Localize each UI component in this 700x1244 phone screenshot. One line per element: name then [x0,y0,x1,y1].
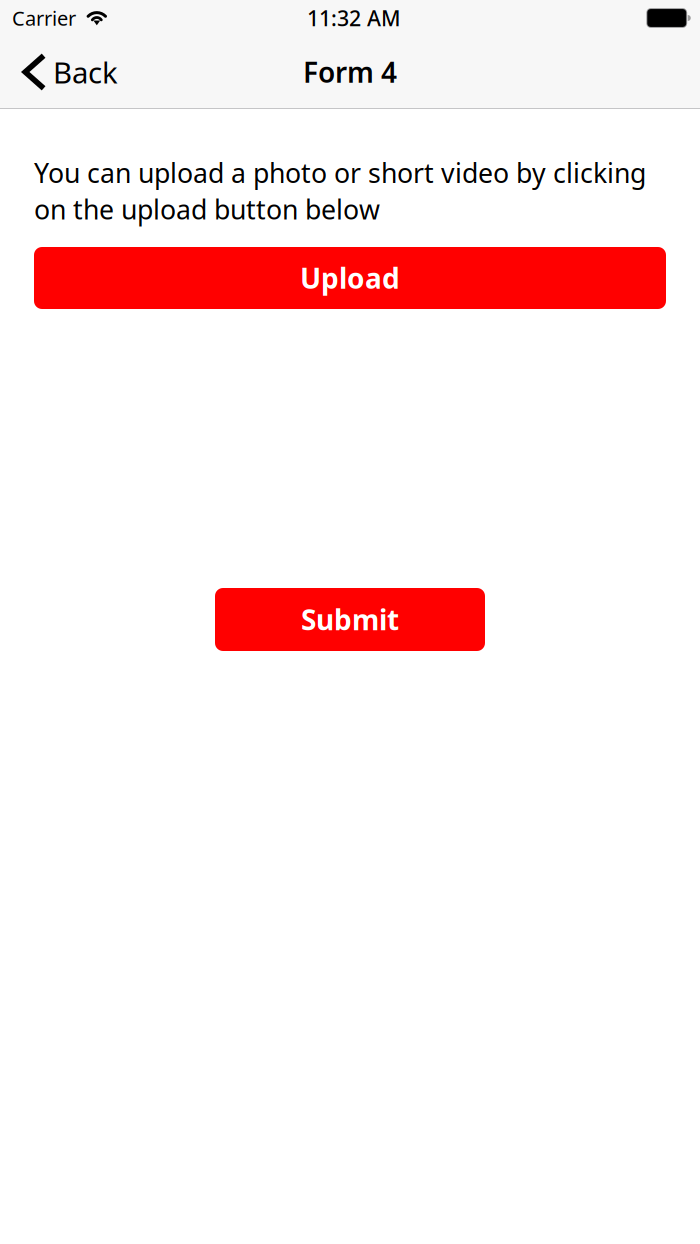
staticText: Back [53,52,118,91]
staticText: Upload [300,259,400,297]
button[interactable]: Back [0,36,134,108]
staticText: 11:32 AM [307,4,401,32]
staticText: Form 4 [303,53,397,91]
staticText: on the upload button below [34,191,380,227]
staticText: Submit [301,601,399,638]
staticText: Carrier [12,5,76,31]
button[interactable]: Upload [34,247,666,309]
button[interactable]: Submit [215,588,485,651]
staticText: You can upload a photo or short video by… [34,155,646,190]
